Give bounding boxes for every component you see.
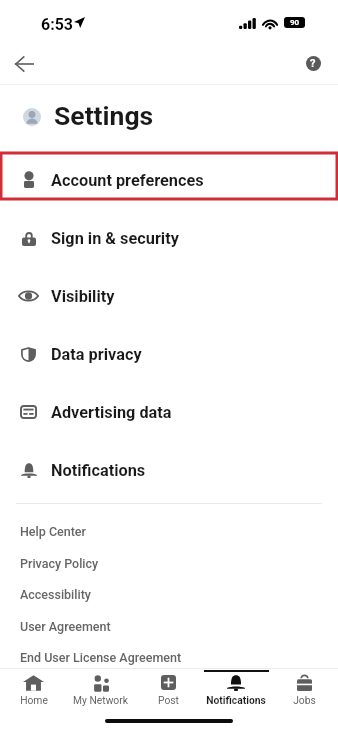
staticText: Notifications (51, 461, 146, 480)
button[interactable]: My Network (67, 668, 134, 710)
button[interactable]: Privacy Policy (0, 550, 338, 576)
staticText: 6:53 (41, 15, 74, 34)
button[interactable]: Data privacy (0, 325, 338, 383)
button[interactable]: Account preferences (0, 151, 338, 209)
button[interactable]: Jobs (270, 668, 338, 710)
staticText: Home (20, 694, 48, 706)
staticText: Sign in & security (51, 229, 179, 248)
staticText: User Agreement (20, 619, 111, 634)
staticText: End User License Agreement (20, 650, 182, 665)
staticText: Help Center (20, 524, 86, 539)
button[interactable]: Visibility (0, 267, 338, 325)
button[interactable]: Back (6, 46, 42, 82)
button[interactable]: User Agreement (0, 613, 338, 639)
button[interactable]: Help (296, 46, 330, 80)
button[interactable]: Help Center (0, 518, 338, 544)
staticText: 90 (290, 18, 300, 27)
button[interactable]: End User License Agreement (0, 644, 338, 670)
staticText: Account preferences (51, 171, 204, 190)
button[interactable]: Post (134, 668, 202, 710)
staticText: ? (310, 57, 316, 70)
button[interactable]: Advertising data (0, 383, 338, 441)
staticText: Post (158, 694, 179, 706)
button[interactable]: Accessibility (0, 581, 338, 607)
button[interactable]: Home (0, 668, 67, 710)
staticText: Data privacy (51, 345, 142, 364)
button[interactable]: Sign in & security (0, 209, 338, 267)
staticText: Visibility (51, 287, 115, 306)
staticText: Notifications (206, 694, 266, 706)
staticText: Privacy Policy (20, 556, 99, 571)
button[interactable]: Notifications (0, 441, 338, 499)
staticText: Settings (54, 100, 154, 131)
button[interactable]: Notifications (202, 668, 270, 710)
staticText: Advertising data (51, 403, 172, 422)
staticText: Accessibility (20, 587, 91, 602)
staticText: Jobs (293, 694, 316, 706)
staticText: My Network (73, 694, 128, 706)
